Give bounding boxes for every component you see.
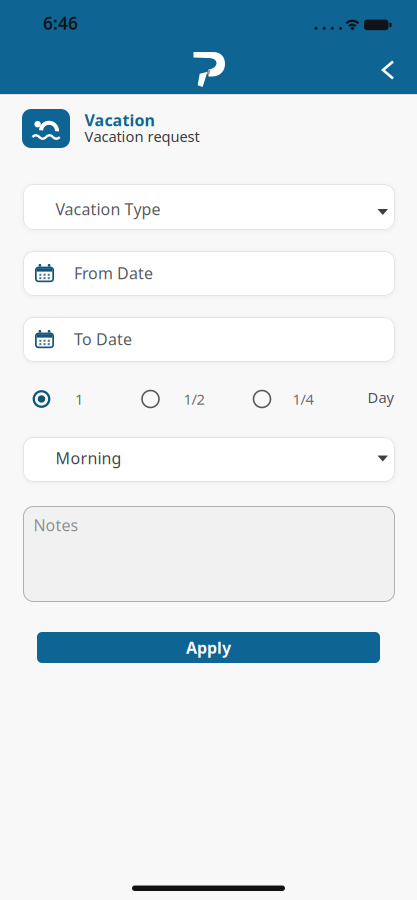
- staticText: 1/4: [292, 389, 313, 409]
- button[interactable]: 1: [33, 386, 83, 412]
- staticText: Apply: [186, 637, 231, 658]
- staticText: Morning: [55, 447, 121, 469]
- button[interactable]: Apply: [37, 632, 380, 663]
- staticText: Vacation: [84, 109, 154, 131]
- button[interactable]: Notes: [23, 506, 395, 602]
- staticText: Vacation request: [84, 126, 199, 146]
- button[interactable]: To Date: [23, 317, 395, 362]
- staticText: Vacation Type: [55, 198, 160, 220]
- staticText: To Date: [74, 328, 132, 350]
- staticText: 1: [75, 389, 83, 409]
- staticText: From Date: [74, 262, 153, 284]
- staticText: 1/2: [183, 389, 204, 409]
- staticText: Day: [367, 387, 393, 407]
- staticText: 6:46: [43, 11, 78, 34]
- button[interactable]: 1/4: [253, 386, 313, 412]
- button[interactable]: Morning: [23, 437, 395, 482]
- button[interactable]: Back: [366, 48, 410, 92]
- staticText: Notes: [33, 514, 78, 536]
- button[interactable]: Vacation Type: [23, 184, 395, 230]
- button[interactable]: 1/2: [142, 386, 204, 412]
- button[interactable]: From Date: [23, 251, 395, 296]
